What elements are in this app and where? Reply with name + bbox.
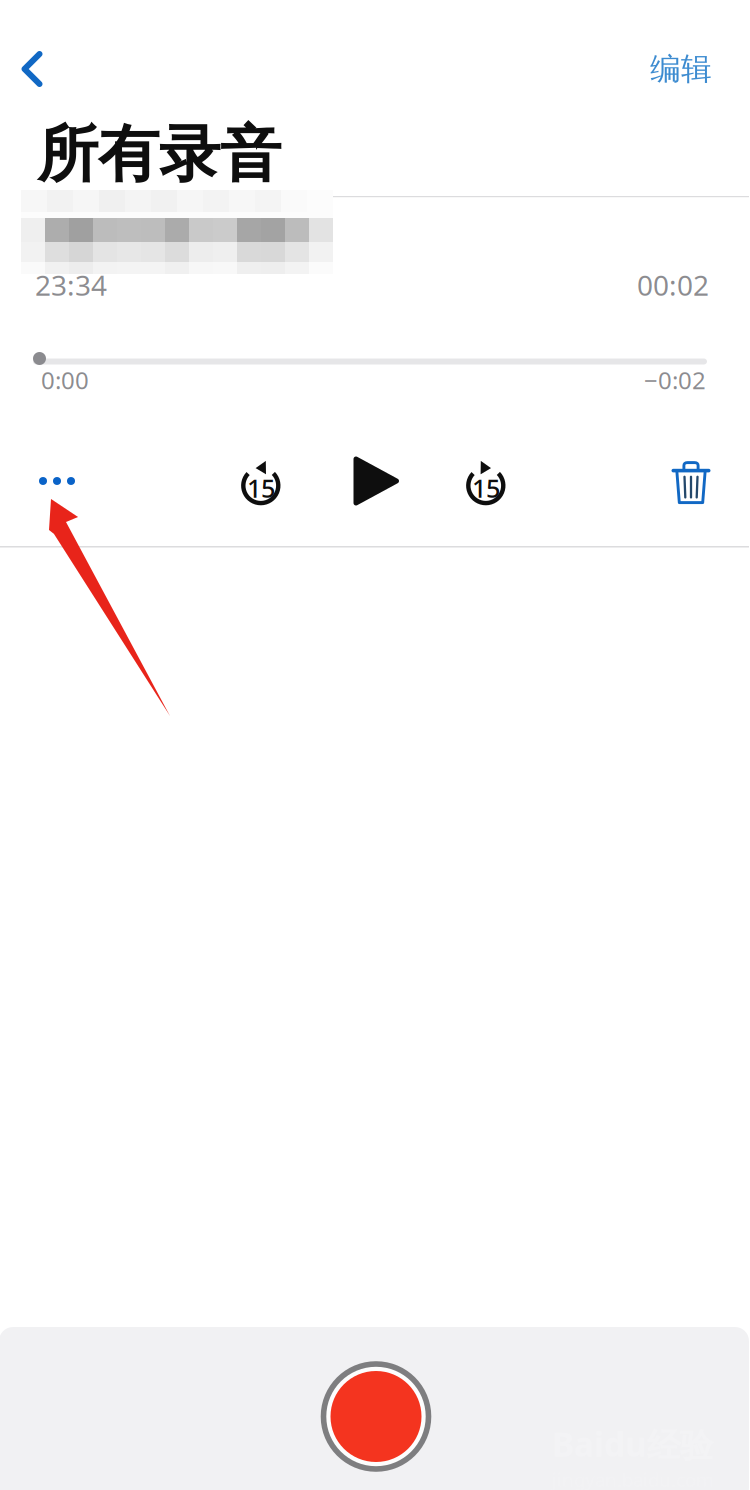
button[interactable]: 前进 15 秒: [444, 451, 528, 519]
button[interactable]: 录音: [306, 1346, 446, 1486]
button[interactable]: 编辑: [615, 34, 747, 104]
staticText: 编辑: [650, 50, 712, 88]
button[interactable]: 更多: [12, 448, 102, 514]
staticText: −0:02: [644, 364, 706, 396]
staticText: 所有录音: [37, 117, 281, 192]
button[interactable]: 返回: [0, 32, 69, 106]
button[interactable]: 删除: [648, 450, 734, 516]
button[interactable]: 后退 15 秒: [219, 451, 303, 519]
staticText: 0:00: [41, 364, 89, 396]
staticText: 00:02: [637, 266, 709, 304]
staticText: 15: [247, 471, 275, 505]
button[interactable]: 播放: [333, 448, 419, 514]
staticText: 15: [472, 471, 500, 505]
staticText: 23:34: [35, 266, 107, 304]
